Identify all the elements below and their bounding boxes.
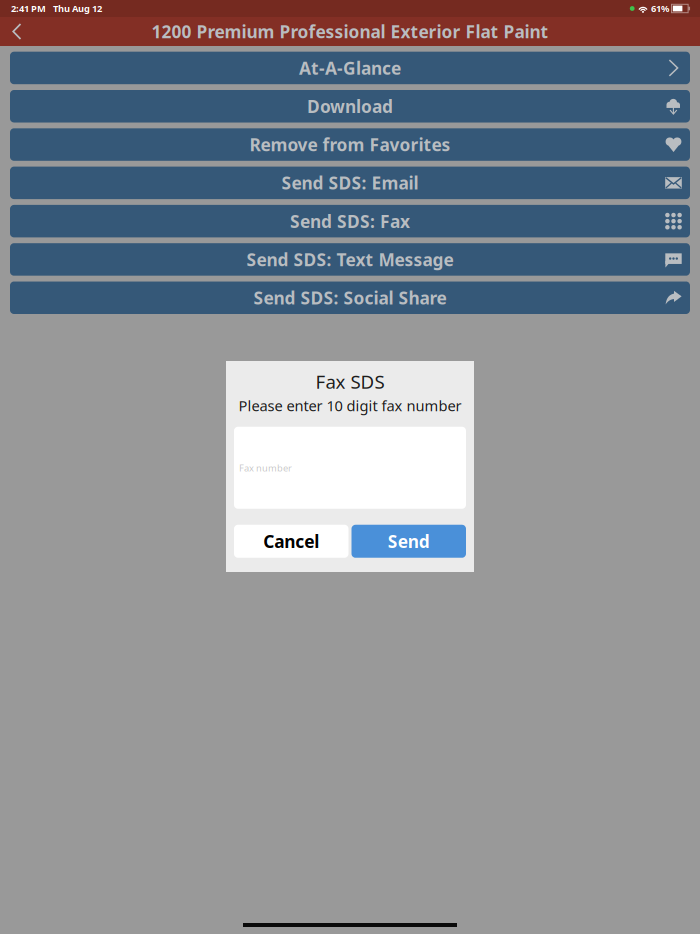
button[interactable]: Send SDS: Text Message <box>10 243 690 276</box>
staticText: Remove from Favorites <box>249 133 450 156</box>
button[interactable]: Cancel <box>234 525 348 558</box>
staticText: Please enter 10 digit fax number <box>238 396 461 415</box>
button[interactable]: Download <box>10 90 690 122</box>
button[interactable]: At-A-Glance <box>10 52 690 84</box>
staticText: Send SDS: Text Message <box>246 248 453 271</box>
staticText: Fax number <box>239 462 292 474</box>
button[interactable]: Send <box>351 525 466 558</box>
staticText: 2:41 PM <box>11 2 46 15</box>
staticText: 61% <box>651 2 669 15</box>
staticText: Fax SDS <box>315 369 384 394</box>
button[interactable]: Send SDS: Email <box>10 167 690 199</box>
staticText: Cancel <box>263 530 319 553</box>
staticText: Thu Aug 12 <box>53 2 102 15</box>
staticText: 1200 Premium Professional Exterior Flat … <box>151 20 548 43</box>
button[interactable]: Send SDS: Social Share <box>10 281 690 314</box>
button[interactable]: Send SDS: Fax <box>10 205 690 237</box>
staticText: Send SDS: Fax <box>290 210 410 233</box>
button[interactable]: Back <box>5 18 30 45</box>
button[interactable]: Remove from Favorites <box>10 128 690 161</box>
staticText: Send <box>388 530 430 553</box>
staticText: Send SDS: Email <box>281 171 418 194</box>
staticText: Send SDS: Social Share <box>253 286 446 309</box>
staticText: At-A-Glance <box>299 56 401 79</box>
staticText: Download <box>307 95 393 118</box>
